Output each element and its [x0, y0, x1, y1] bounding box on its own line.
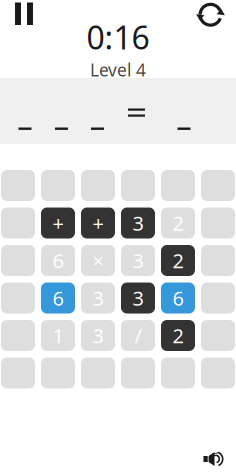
staticText: 3 — [132, 285, 143, 311]
staticText: 3 — [92, 322, 103, 349]
staticText: 6 — [52, 285, 63, 311]
staticText: + — [52, 210, 63, 236]
staticText: 3 — [92, 285, 103, 311]
staticText: / — [134, 322, 141, 349]
button[interactable]: Sound — [203, 452, 226, 466]
staticText: Level 4 — [90, 58, 146, 81]
staticText: 6 — [52, 247, 63, 274]
staticText: 1 — [52, 322, 63, 349]
staticText: 6 — [172, 285, 183, 311]
staticText: 2 — [172, 210, 183, 236]
button[interactable]: Pause — [15, 2, 33, 25]
staticText: 3 — [132, 247, 143, 274]
button[interactable]: Restart — [196, 2, 225, 26]
staticText: 3 — [132, 210, 143, 236]
staticText: × — [92, 247, 103, 274]
staticText: 0:16 — [86, 16, 149, 58]
staticText: + — [92, 210, 103, 236]
staticText: 2 — [172, 322, 183, 349]
staticText: 2 — [172, 247, 183, 274]
